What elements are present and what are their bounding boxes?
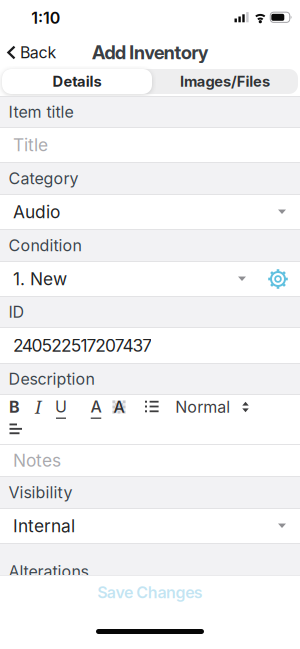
button[interactable]: Italic	[35, 395, 41, 419]
staticText: Description	[8, 370, 94, 388]
staticText: Category	[8, 169, 78, 188]
button[interactable]: Audio	[0, 195, 300, 229]
staticText: Item title	[8, 103, 73, 121]
button[interactable]: Images/Files	[152, 69, 298, 94]
staticText: Visibility	[8, 483, 72, 502]
staticText: A	[113, 398, 124, 416]
button[interactable]: Paragraph style	[175, 398, 249, 416]
button[interactable]: ID	[0, 328, 300, 363]
button[interactable]: Internal	[0, 509, 300, 543]
staticText: 240522517207437	[13, 335, 152, 356]
button[interactable]: Underline	[55, 397, 67, 419]
staticText: A	[90, 397, 101, 416]
staticText: Internal	[13, 516, 75, 536]
button[interactable]: Highlight color	[112, 400, 125, 413]
button[interactable]: Text color	[90, 397, 101, 419]
staticText: Normal	[175, 398, 230, 416]
button[interactable]: 1. New	[0, 262, 300, 296]
staticText: Notes	[13, 450, 61, 471]
button[interactable]: Bulleted list	[145, 400, 159, 413]
staticText: Audio	[13, 202, 60, 222]
staticText: Condition	[8, 236, 81, 255]
button[interactable]: Notes	[0, 445, 300, 476]
button[interactable]: Title	[0, 128, 300, 162]
button[interactable]: Details	[2, 69, 152, 94]
staticText: Alterations	[8, 562, 88, 581]
staticText: Back	[20, 43, 56, 62]
button[interactable]: Back	[0, 43, 56, 62]
staticText: Add Inventory	[92, 41, 208, 64]
staticText: Details	[53, 73, 101, 90]
staticText: ID	[8, 303, 24, 321]
button[interactable]: Save Changes	[97, 583, 203, 602]
staticText: Images/Files	[180, 73, 270, 90]
staticText: 1. New	[13, 269, 67, 289]
staticText: B	[9, 398, 20, 416]
staticText: U	[55, 397, 67, 416]
button[interactable]: Bold	[9, 398, 20, 416]
button[interactable]: Condition settings	[267, 268, 289, 290]
staticText: Save Changes	[97, 583, 203, 602]
button[interactable]: Alignment	[9, 423, 22, 434]
staticText: Title	[13, 135, 48, 155]
staticText: 1:10	[31, 9, 61, 27]
staticText: I	[35, 395, 41, 419]
